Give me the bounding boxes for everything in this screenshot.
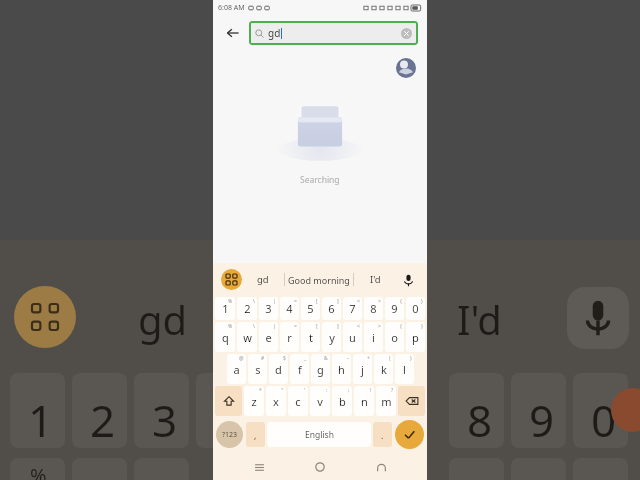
staticText: q <box>222 330 229 345</box>
button[interactable]: , <box>246 422 265 447</box>
button[interactable]: { <box>385 322 404 352</box>
button[interactable]: # <box>248 354 267 384</box>
staticText: 9 <box>391 301 398 316</box>
button[interactable]: > <box>364 322 383 352</box>
button[interactable]: Enter <box>395 420 424 449</box>
button[interactable]: Recents <box>244 454 274 480</box>
button[interactable]: Backspace <box>398 386 425 416</box>
button[interactable]: % <box>215 297 235 320</box>
staticText: I'd <box>457 292 502 346</box>
button[interactable]: ' <box>288 386 308 416</box>
staticText: j <box>361 362 364 377</box>
button[interactable]: ? <box>376 386 396 416</box>
staticText: 3 <box>152 390 178 450</box>
staticText: gd <box>268 26 281 40</box>
staticText: 9 <box>529 390 555 450</box>
staticText: 2 <box>244 301 251 316</box>
button[interactable]: . <box>373 422 392 447</box>
staticText: , <box>254 429 257 441</box>
button[interactable]: : <box>310 386 330 416</box>
button[interactable]: | <box>259 297 278 320</box>
staticText: a <box>233 362 240 377</box>
button[interactable]: \ <box>237 297 257 320</box>
staticText: Good morning <box>288 274 350 286</box>
staticText: ? <box>391 387 394 394</box>
button[interactable]: Voice input <box>397 269 419 291</box>
button[interactable]: @ <box>227 354 246 384</box>
button[interactable]: * <box>244 386 264 416</box>
button[interactable]: gd <box>242 263 284 296</box>
button[interactable]: & <box>311 354 330 384</box>
button[interactable]: Clear <box>401 28 412 39</box>
staticText: v <box>317 394 323 409</box>
button[interactable]: % <box>215 322 235 352</box>
staticText: 0 <box>591 390 617 450</box>
staticText: ! <box>370 387 372 394</box>
button[interactable]: [ <box>301 297 320 320</box>
button[interactable]: } <box>406 322 425 352</box>
staticText: 6 <box>328 301 335 316</box>
staticText: gd <box>138 292 188 346</box>
staticText: * <box>259 387 262 394</box>
button[interactable]: Shift <box>215 386 242 416</box>
button[interactable]: Back <box>221 21 245 45</box>
button[interactable]: " <box>266 386 286 416</box>
button[interactable]: = <box>280 297 299 320</box>
button[interactable]: { <box>385 297 404 320</box>
button[interactable]: _ <box>290 354 309 384</box>
button[interactable]: Good morning <box>285 263 353 296</box>
staticText: l <box>403 362 406 377</box>
staticText: 4 <box>286 301 293 316</box>
staticText: f <box>298 362 302 377</box>
staticText: [ <box>316 298 318 305</box>
button[interactable]: gd <box>249 21 418 45</box>
staticText: s <box>255 362 261 377</box>
staticText: 1 <box>222 301 229 316</box>
staticText: % <box>30 462 47 480</box>
button[interactable]: Keyboard menu <box>221 269 242 290</box>
button[interactable]: ?123 <box>216 421 243 448</box>
staticText: { <box>400 298 402 305</box>
button[interactable]: English <box>267 422 371 447</box>
button[interactable]: ) <box>395 354 414 384</box>
button[interactable]: < <box>343 322 362 352</box>
staticText: I'd <box>370 273 381 286</box>
staticText: Searching <box>300 174 340 186</box>
staticText: > <box>378 323 381 330</box>
button[interactable]: | <box>259 322 278 352</box>
staticText: e <box>265 330 272 345</box>
button[interactable]: Home <box>305 454 335 480</box>
button[interactable]: ] <box>322 322 341 352</box>
staticText: 2 <box>90 390 116 450</box>
staticText: $ <box>283 355 286 362</box>
staticText: \ <box>253 323 255 330</box>
button[interactable]: I'd <box>354 263 397 296</box>
staticText: - <box>347 355 349 362</box>
staticText: 5 <box>307 301 314 316</box>
staticText: } <box>421 298 423 305</box>
staticText: _ <box>304 355 307 362</box>
button[interactable]: Back <box>366 454 396 480</box>
button[interactable]: > <box>364 297 383 320</box>
button[interactable]: $ <box>269 354 288 384</box>
staticText: p <box>412 330 419 345</box>
staticText: | <box>273 298 276 305</box>
button[interactable]: \ <box>237 322 257 352</box>
button[interactable]: [ <box>301 322 320 352</box>
button[interactable]: = <box>280 322 299 352</box>
button[interactable]: } <box>406 297 425 320</box>
button[interactable]: Profile <box>396 58 416 78</box>
button[interactable]: ! <box>354 386 374 416</box>
staticText: < <box>357 298 360 305</box>
staticText: 7 <box>349 301 356 316</box>
button[interactable]: ] <box>322 297 341 320</box>
staticText: z <box>251 394 257 409</box>
button[interactable]: ; <box>332 386 352 416</box>
button[interactable]: - <box>332 354 351 384</box>
staticText: \ <box>253 298 255 305</box>
staticText: 8 <box>370 301 377 316</box>
button[interactable]: ( <box>374 354 393 384</box>
button[interactable]: < <box>343 297 362 320</box>
staticText: y <box>329 330 335 345</box>
button[interactable]: + <box>353 354 372 384</box>
